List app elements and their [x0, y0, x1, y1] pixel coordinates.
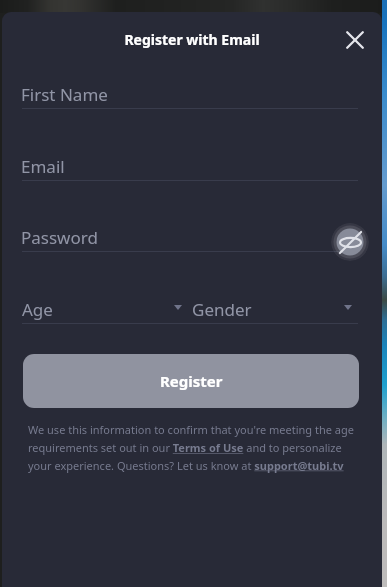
button[interactable]: Show password	[331, 223, 369, 261]
staticText: Age	[22, 298, 53, 321]
staticText: Register	[160, 371, 223, 391]
button[interactable]: Close	[339, 24, 371, 56]
staticText: Register with Email	[2, 30, 382, 49]
staticText: Password	[21, 226, 98, 249]
button[interactable]: Password	[21, 226, 382, 249]
button[interactable]: Register	[23, 354, 359, 408]
staticText: First Name	[21, 83, 108, 106]
staticText: Gender	[192, 298, 252, 321]
staticText: Email	[21, 155, 65, 178]
button[interactable]: Email	[21, 155, 382, 178]
button[interactable]: First Name	[21, 83, 382, 106]
button[interactable]: Age	[22, 298, 182, 321]
button[interactable]: Gender	[193, 298, 352, 321]
staticText: We use this information to confirm that …	[28, 422, 355, 473]
